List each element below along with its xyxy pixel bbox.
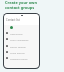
- button[interactable]: Family people: [4, 43, 39, 49]
- button[interactable]: Weekend travel: [4, 55, 39, 61]
- button[interactable]: Close friends: [4, 49, 39, 55]
- staticText: contact groups: [5, 5, 35, 10]
- staticText: Family people: [10, 45, 26, 48]
- staticText: Close friends: [10, 51, 25, 54]
- staticText: Create your own: [5, 0, 37, 5]
- button[interactable]: Create group: [10, 26, 13, 29]
- staticText: New group: [10, 32, 23, 35]
- button[interactable]: New group: [4, 30, 39, 36]
- button[interactable]: Work colleagues: [4, 36, 39, 42]
- staticText: Weekend travel: [10, 57, 28, 60]
- staticText: Contact list: [6, 18, 20, 22]
- staticText: Work colleagues: [10, 38, 29, 41]
